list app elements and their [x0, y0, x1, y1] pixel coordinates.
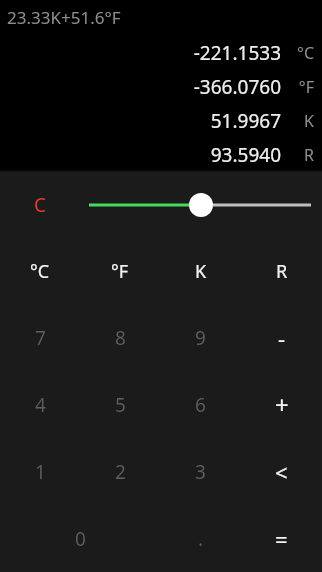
staticText: -366.0760 [0, 74, 281, 100]
staticText: 93.5940 [0, 142, 281, 168]
staticText: 3 [195, 459, 206, 485]
staticText: 9 [195, 325, 206, 351]
button[interactable]: R [241, 238, 322, 305]
staticText: °F [111, 259, 129, 284]
staticText: 5 [115, 392, 126, 418]
staticText: 6 [195, 392, 206, 418]
button[interactable]: 7 [0, 305, 80, 371]
button[interactable]: 6 [160, 371, 241, 438]
staticText: -221.1533 [0, 40, 281, 66]
button[interactable]: 5 [80, 371, 160, 438]
staticText: . [198, 526, 204, 552]
staticText: + [275, 388, 289, 421]
staticText: °C [281, 42, 314, 64]
button[interactable]: Backspace [241, 438, 322, 505]
staticText: 51.9967 [0, 108, 281, 134]
button[interactable]: Plus [241, 371, 322, 438]
button[interactable]: K [160, 238, 241, 305]
staticText: K [281, 110, 314, 132]
button[interactable]: Minus [241, 305, 322, 371]
staticText: °F [281, 76, 314, 98]
staticText: 0 [75, 526, 86, 552]
button[interactable]: 4 [0, 371, 80, 438]
staticText: K [195, 259, 207, 284]
staticText: °C [30, 259, 50, 284]
staticText: R [276, 259, 288, 284]
staticText: 8 [115, 325, 126, 351]
button[interactable]: 3 [160, 438, 241, 505]
staticText: = [275, 524, 288, 554]
staticText: 4 [35, 392, 46, 418]
staticText: 23.33K+51.6°F [7, 6, 121, 29]
button[interactable]: Equals [241, 505, 322, 572]
button[interactable]: 8 [80, 305, 160, 371]
button[interactable]: 0 [0, 505, 160, 572]
button[interactable]: 2 [80, 438, 160, 505]
button[interactable]: °C [0, 238, 80, 305]
button[interactable]: 1 [0, 438, 80, 505]
button[interactable]: 9 [160, 305, 241, 371]
staticText: C [34, 192, 47, 218]
staticText: 1 [35, 459, 46, 485]
button[interactable]: °F [80, 238, 160, 305]
staticText: - [278, 323, 286, 353]
staticText: < [275, 457, 288, 487]
button[interactable]: Precision slider [78, 188, 322, 222]
staticText: 7 [35, 325, 46, 351]
button[interactable]: 23.33K+51.6°F [0, 0, 322, 172]
staticText: R [281, 144, 314, 166]
staticText: 2 [115, 459, 126, 485]
